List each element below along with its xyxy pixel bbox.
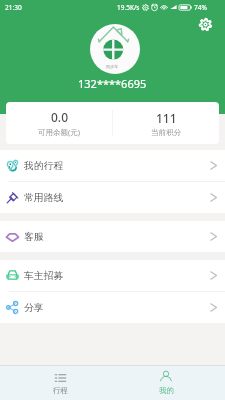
staticText: 客服 bbox=[24, 231, 44, 243]
button[interactable]: Settings bbox=[199, 18, 212, 31]
button[interactable]: 客服 bbox=[0, 221, 225, 252]
staticText: 当前积分 bbox=[151, 128, 181, 137]
button[interactable]: 分享 bbox=[0, 292, 225, 323]
staticText: 19.5K/s bbox=[117, 3, 140, 12]
staticText: 74% bbox=[194, 3, 207, 12]
staticText: 21:30 bbox=[5, 3, 22, 12]
button[interactable]: 常用路线 bbox=[0, 182, 225, 213]
staticText: 0.0 bbox=[51, 109, 68, 125]
staticText: 行程 bbox=[53, 386, 68, 395]
staticText: 分享 bbox=[24, 302, 44, 314]
staticText: 111 bbox=[156, 110, 177, 126]
staticText: 同步车 bbox=[106, 64, 118, 69]
staticText: 我的 bbox=[159, 386, 174, 395]
button[interactable]: 我的 bbox=[113, 366, 219, 400]
button[interactable]: 车主招募 bbox=[0, 260, 225, 291]
staticText: 我的行程 bbox=[24, 160, 64, 172]
button[interactable]: 我的行程 bbox=[0, 150, 225, 181]
staticText: 可用余额(元) bbox=[38, 127, 80, 137]
staticText: 132****6695 bbox=[78, 76, 147, 91]
button[interactable]: 行程 bbox=[7, 366, 113, 400]
staticText: 常用路线 bbox=[24, 192, 64, 204]
staticText: 车主招募 bbox=[24, 270, 64, 282]
